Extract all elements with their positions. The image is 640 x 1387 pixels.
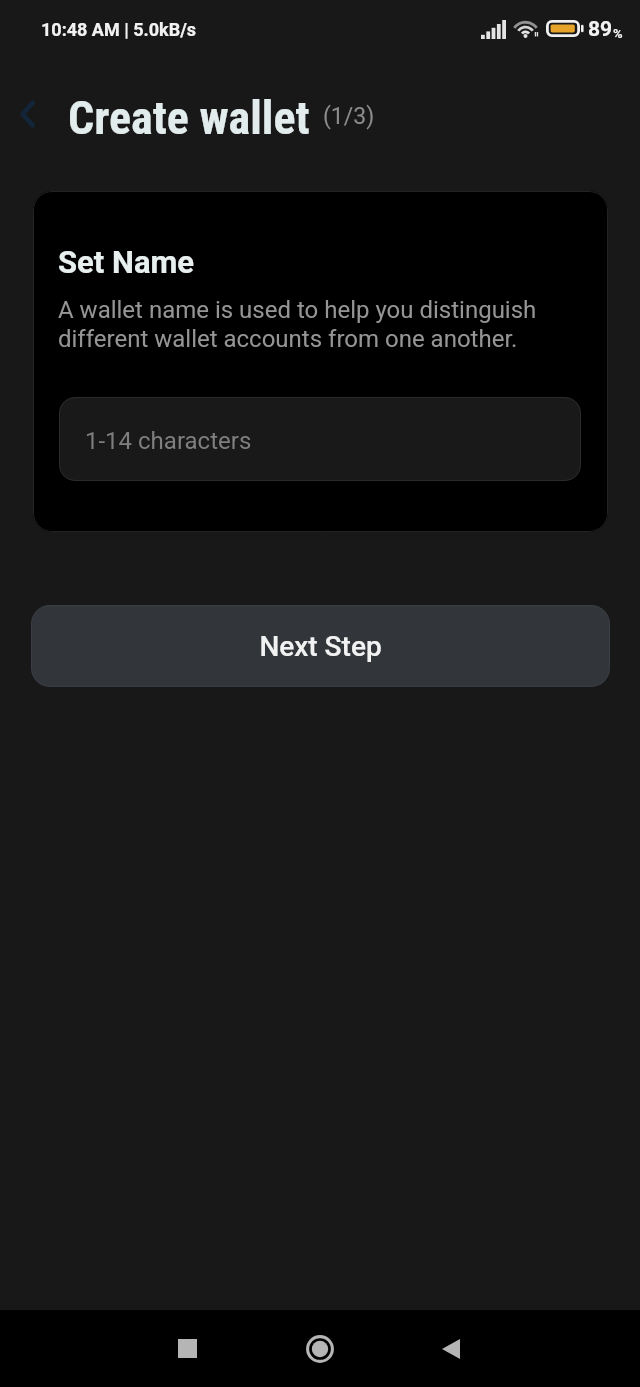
button[interactable]: Home: [280, 1310, 360, 1387]
staticText: Next Step: [259, 630, 382, 663]
staticText: (1/3): [323, 103, 375, 130]
button[interactable]: Recent apps: [147, 1310, 227, 1387]
staticText: 10:48 AM | 5.0kB/s: [41, 19, 197, 40]
staticText: 1-14 characters: [85, 427, 252, 455]
staticText: A wallet name is used to help you distin…: [58, 296, 558, 353]
staticText: 89: [588, 17, 613, 42]
button[interactable]: 1-14 characters: [59, 397, 581, 481]
button[interactable]: Next Step: [31, 605, 610, 687]
staticText: Set Name: [58, 244, 195, 280]
button[interactable]: Back: [0, 86, 56, 142]
staticText: %: [613, 26, 623, 41]
button[interactable]: Back: [411, 1310, 491, 1387]
staticText: Create wallet: [68, 91, 310, 145]
